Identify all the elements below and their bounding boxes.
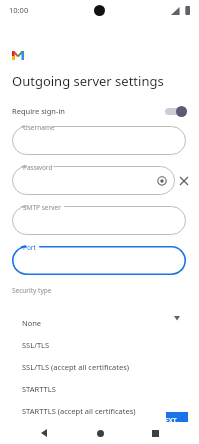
button[interactable]: Username (12, 126, 186, 155)
button[interactable]: Home (89, 422, 111, 444)
button[interactable]: NEXT (148, 412, 188, 429)
button[interactable]: Password (12, 166, 175, 195)
staticText: SMTP server (23, 203, 61, 212)
staticText: 10:00 (9, 5, 29, 15)
button[interactable]: STARTTLS (10, 378, 166, 400)
staticText: Outgoing server settings (12, 72, 164, 90)
staticText: NEXT (159, 416, 177, 426)
staticText: STARTTLS (22, 384, 56, 394)
button[interactable]: Port (12, 246, 186, 275)
staticText: Security type (12, 286, 52, 295)
staticText: Username (23, 123, 55, 132)
button[interactable]: None (10, 312, 166, 334)
button[interactable]: SSL/TLS (10, 334, 166, 356)
staticText: Password (23, 163, 53, 172)
staticText: None (22, 318, 42, 328)
staticText: Port (23, 243, 36, 252)
button[interactable]: Show password (157, 176, 167, 186)
staticText: STARTTLS (accept all certificates) (22, 406, 136, 416)
button[interactable]: Recents (144, 422, 166, 444)
button[interactable]: SMTP server (12, 206, 186, 235)
button[interactable]: SSL/TLS (accept all certificates) (10, 356, 166, 378)
button[interactable]: STARTTLS (accept all certificates) (10, 400, 166, 422)
staticText: Require sign-in (12, 106, 65, 116)
staticText: SSL/TLS (accept all certificates) (22, 362, 129, 372)
button[interactable]: Require sign-in (0, 102, 199, 120)
button[interactable]: Back (33, 422, 55, 444)
button[interactable]: Clear (175, 172, 193, 190)
staticText: SSL/TLS (22, 340, 50, 350)
